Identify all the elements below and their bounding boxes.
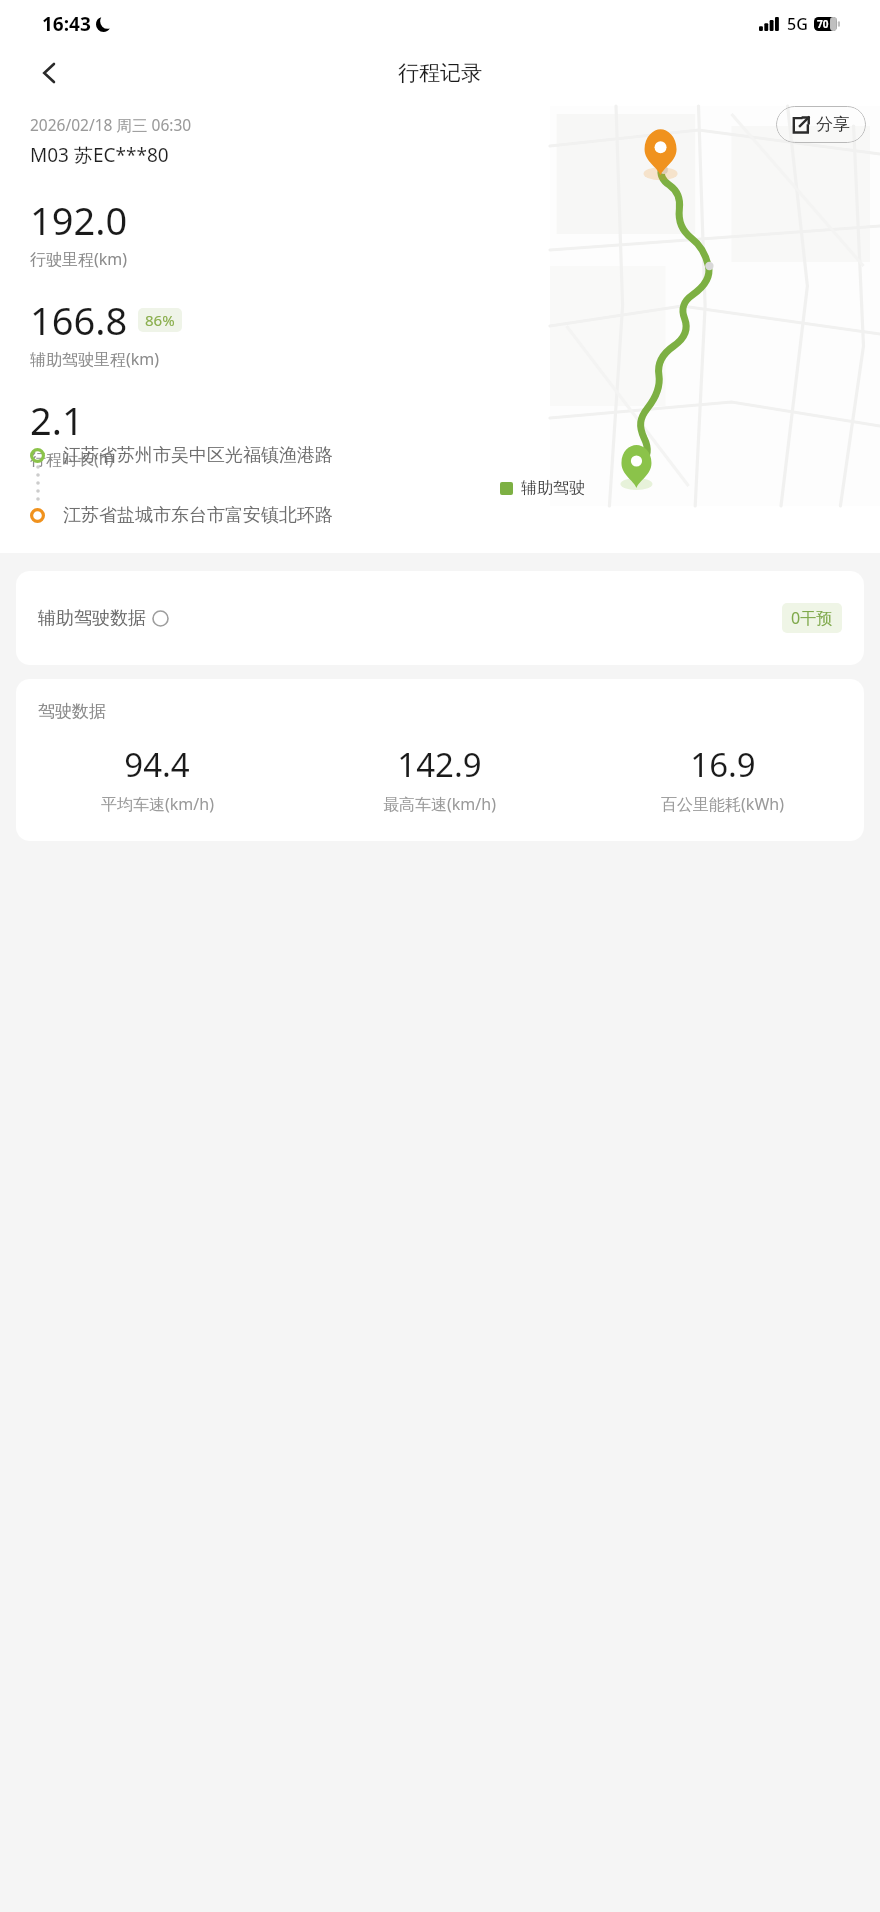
- staticText: 16:43: [42, 11, 91, 37]
- staticText: 江苏省苏州市吴中区光福镇渔港路: [63, 444, 333, 467]
- staticText: 0干预: [791, 607, 833, 629]
- staticText: 166.8: [30, 294, 128, 346]
- staticText: 2026/02/18 周三 06:30: [30, 114, 192, 135]
- staticText: 行驶里程(km): [30, 248, 128, 270]
- staticText: 辅助驾驶: [521, 478, 585, 498]
- staticText: 驾驶数据: [38, 701, 106, 722]
- button[interactable]: Back: [30, 53, 70, 93]
- staticText: 分享: [816, 114, 850, 135]
- staticText: 最高车速(km/h): [383, 793, 496, 815]
- staticText: 2.1: [30, 394, 84, 446]
- staticText: 5G: [787, 13, 808, 35]
- staticText: 行程时长(h): [30, 448, 114, 470]
- staticText: 192.0: [30, 194, 128, 246]
- staticText: 142.9: [397, 742, 482, 787]
- button[interactable]: 驾驶数据: [16, 679, 864, 841]
- staticText: 辅助驾驶里程(km): [30, 348, 160, 370]
- staticText: 辅助驾驶数据: [38, 607, 146, 630]
- staticText: 平均车速(km/h): [101, 793, 214, 815]
- staticText: 94.4: [124, 742, 190, 787]
- button[interactable]: 辅助驾驶数据: [16, 571, 864, 665]
- staticText: 86%: [145, 310, 175, 330]
- staticText: 江苏省盐城市东台市富安镇北环路: [63, 504, 333, 527]
- staticText: M03 苏EC***80: [30, 142, 169, 168]
- button[interactable]: 分享: [776, 106, 866, 143]
- staticText: 70: [817, 17, 829, 31]
- staticText: 行程记录: [398, 60, 482, 86]
- staticText: 16.9: [690, 742, 756, 787]
- staticText: 百公里能耗(kWh): [661, 793, 784, 815]
